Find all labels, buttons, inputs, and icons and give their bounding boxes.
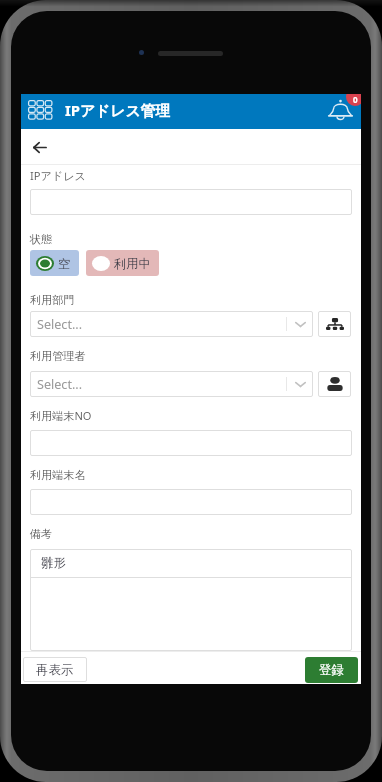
staticText: IPアドレス — [30, 168, 86, 183]
staticText: 利用管理者 — [30, 349, 86, 363]
staticText: 利用中 — [114, 256, 151, 271]
staticText: 利用端末名 — [30, 468, 86, 482]
staticText: 利用部門 — [30, 293, 75, 307]
button[interactable]: Select... — [30, 311, 313, 337]
button[interactable]: Select... — [30, 371, 313, 397]
staticText: 空 — [58, 256, 71, 271]
staticText: 雛形 — [41, 555, 66, 571]
button[interactable] — [30, 189, 352, 215]
staticText: 備考 — [30, 527, 53, 541]
button[interactable]: 雛形 — [30, 549, 352, 651]
button[interactable]: Menu — [28, 100, 53, 120]
button[interactable] — [30, 489, 352, 515]
staticText: 登録 — [319, 662, 344, 678]
button[interactable]: 利用中 — [86, 250, 159, 276]
staticText: 再表示 — [36, 662, 74, 678]
button[interactable]: Back — [29, 136, 51, 158]
staticText: Select... — [37, 376, 83, 393]
button[interactable]: 空 — [30, 250, 79, 276]
staticText: 利用端末NO — [30, 408, 92, 423]
button[interactable]: Choose person — [318, 371, 351, 397]
button[interactable]: 再表示 — [23, 657, 87, 682]
staticText: IPアドレス管理 — [65, 100, 171, 120]
staticText: 0 — [353, 94, 358, 105]
button[interactable]: Notifications — [328, 99, 353, 120]
staticText: Select... — [37, 316, 83, 333]
button[interactable] — [30, 430, 352, 456]
button[interactable]: Choose department — [318, 311, 351, 337]
staticText: 状態 — [30, 232, 53, 246]
button[interactable]: 登録 — [305, 657, 358, 683]
